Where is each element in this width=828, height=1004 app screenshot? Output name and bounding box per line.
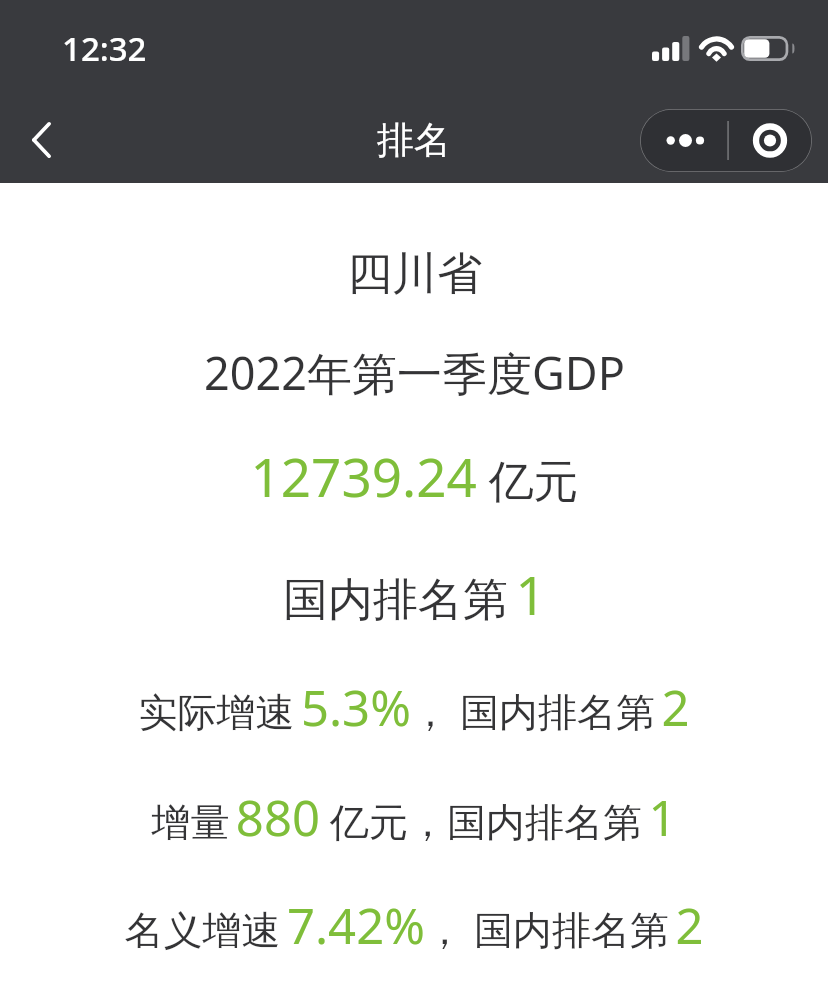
staticText: 增量 880 亿元，国内排名第 1 (151, 784, 677, 851)
staticText: 国内排名第 1 (283, 558, 546, 630)
button[interactable]: Close mini program (726, 109, 812, 172)
staticText: 12:32 (62, 26, 147, 71)
staticText: 名义增速 7.42%， 国内排名第 2 (124, 892, 704, 959)
staticText: 排名 (377, 117, 451, 164)
staticText: 实际增速 5.3%， 国内排名第 2 (138, 674, 690, 741)
button[interactable]: Back (8, 107, 74, 173)
staticText: 12739.24 亿元 (250, 440, 579, 512)
staticText: 2022年第一季度GDP (204, 342, 625, 403)
button[interactable]: More options (640, 109, 726, 172)
staticText: 四川省 (347, 246, 482, 303)
